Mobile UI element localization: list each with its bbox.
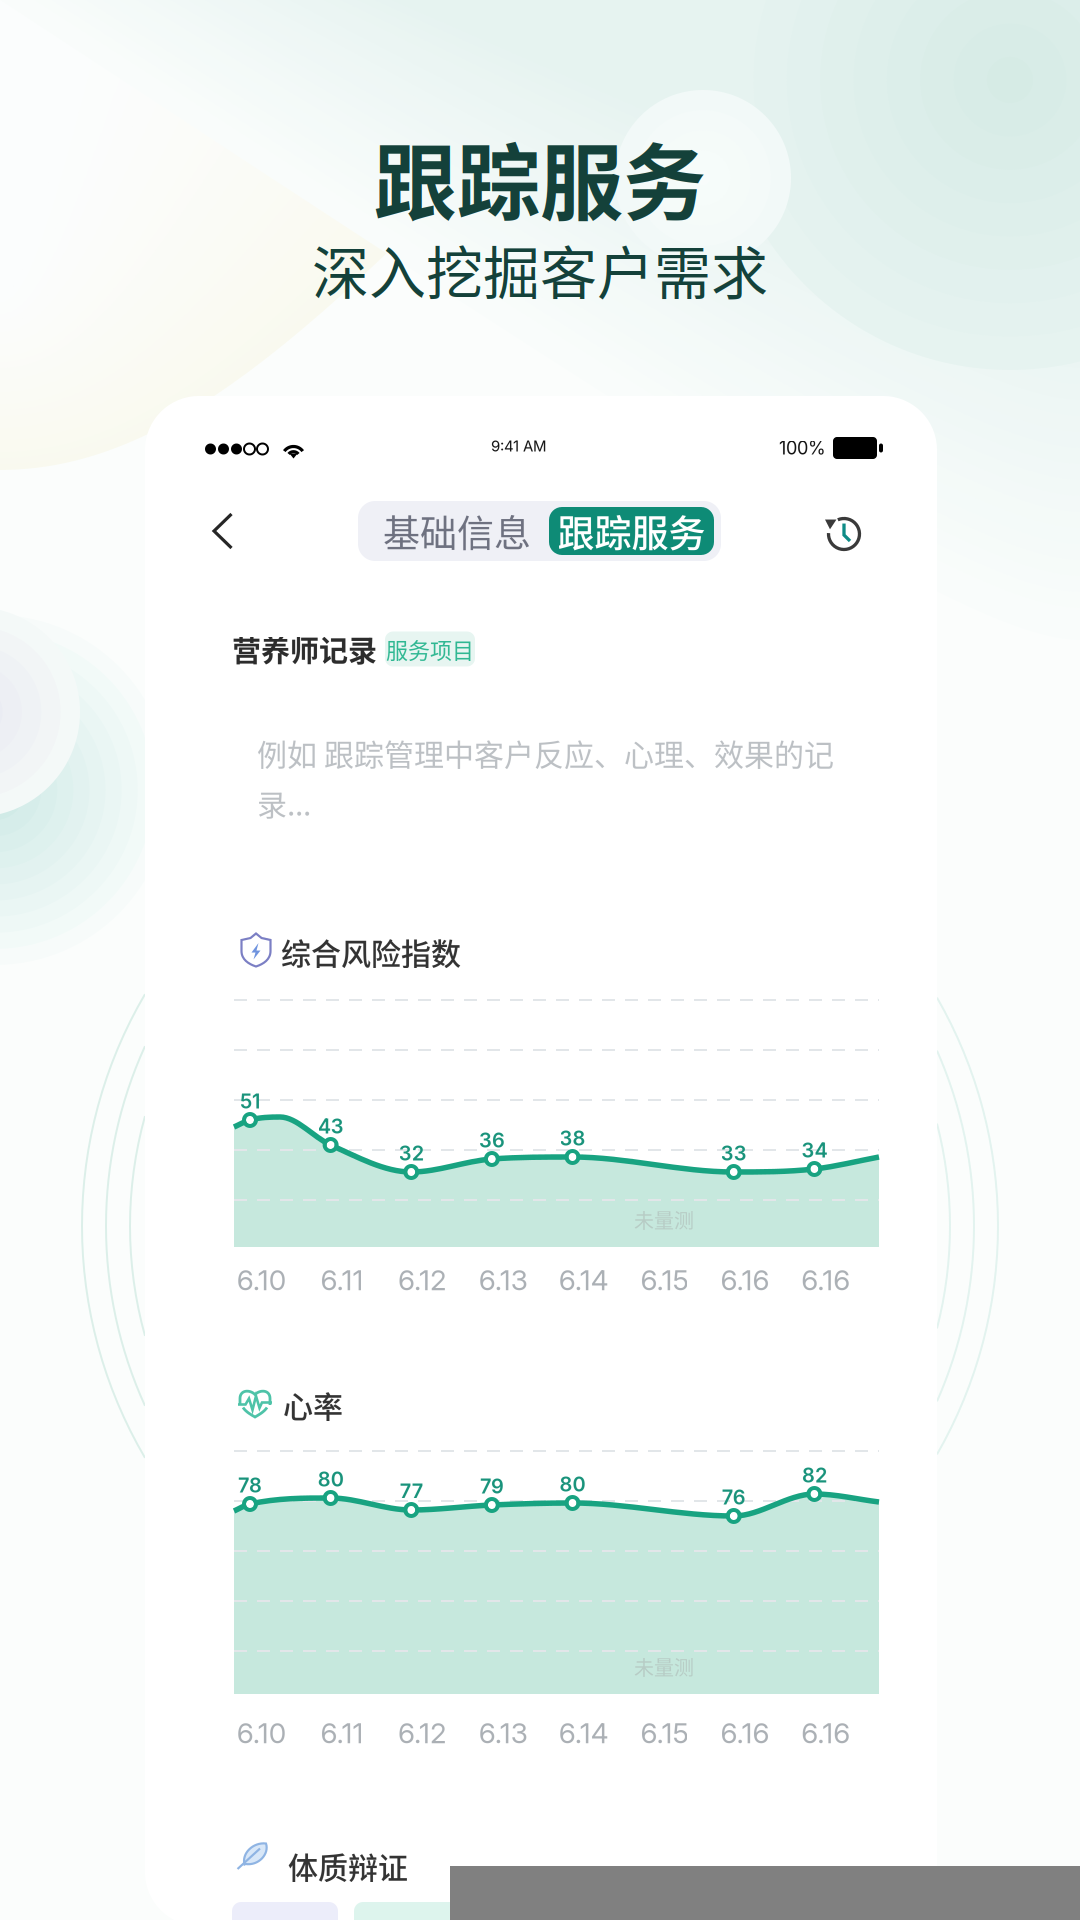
staticText: 6.14 — [559, 1263, 609, 1297]
staticText: 51 — [240, 1089, 260, 1113]
button[interactable]: History — [816, 506, 872, 562]
staticText: 例如 跟踪管理中客户反应、心理、效果的记 — [257, 731, 834, 774]
button[interactable]: 跟踪服务 — [549, 507, 714, 555]
staticText: 82 — [802, 1463, 827, 1487]
staticText: 6.13 — [479, 1263, 528, 1297]
staticText: 34 — [801, 1138, 827, 1162]
staticText: 未量测 — [634, 1205, 694, 1234]
staticText: 跟踪服务 — [557, 504, 705, 558]
staticText: 心率 — [283, 1383, 343, 1426]
staticText: 深入挖掘客户需求 — [312, 228, 768, 310]
staticText: 9:41 AM — [491, 437, 547, 455]
staticText: 基础信息 — [383, 504, 531, 558]
staticText: 80 — [559, 1472, 585, 1496]
staticText: 6.16 — [721, 1263, 770, 1297]
staticText: 80 — [318, 1467, 344, 1491]
staticText: 录... — [257, 781, 311, 824]
staticText: 服务项目 — [386, 633, 474, 665]
staticText: 综合风险指数 — [281, 930, 461, 973]
staticText: 6.10 — [237, 1263, 286, 1297]
staticText: 78 — [238, 1473, 262, 1497]
staticText: 6.16 — [721, 1716, 770, 1750]
button[interactable]: 基础信息 — [365, 507, 549, 555]
staticText: 6.11 — [320, 1263, 363, 1297]
staticText: 33 — [721, 1141, 747, 1165]
staticText: 6.15 — [640, 1263, 688, 1297]
staticText: 32 — [399, 1141, 424, 1165]
staticText: 43 — [318, 1114, 344, 1138]
staticText: 6.16 — [801, 1716, 850, 1750]
staticText: 36 — [479, 1128, 505, 1152]
staticText: 6.10 — [237, 1716, 286, 1750]
staticText: 跟踪服务 — [374, 117, 706, 237]
staticText: 79 — [480, 1474, 504, 1498]
staticText: 体质辩证 — [288, 1844, 408, 1887]
staticText: 6.16 — [801, 1263, 850, 1297]
staticText: 6.15 — [640, 1716, 688, 1750]
button[interactable]: Back — [195, 503, 251, 559]
staticText: 未量测 — [634, 1652, 694, 1681]
staticText: 6.12 — [398, 1716, 447, 1750]
staticText: 6.14 — [559, 1716, 609, 1750]
staticText: 100% — [779, 437, 826, 459]
staticText: 38 — [559, 1126, 585, 1150]
staticText: 76 — [722, 1485, 746, 1509]
staticText: 77 — [400, 1479, 423, 1503]
staticText: 营养师记录 — [232, 628, 377, 670]
staticText: 6.12 — [398, 1263, 447, 1297]
staticText: 6.11 — [320, 1716, 363, 1750]
staticText: 6.13 — [479, 1716, 528, 1750]
